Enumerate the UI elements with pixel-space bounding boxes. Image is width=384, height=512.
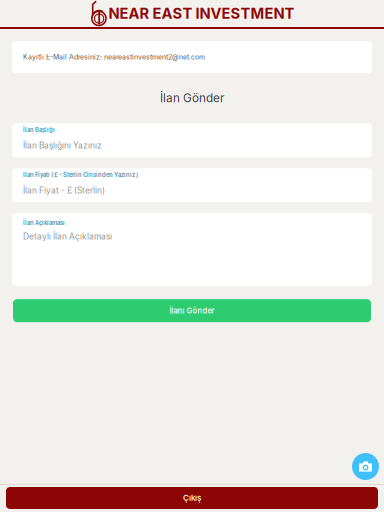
staticText: NEAR EAST INVESTMENT bbox=[108, 5, 294, 22]
staticText: İlan Gönder bbox=[160, 91, 224, 105]
staticText: Çıkış bbox=[183, 493, 201, 503]
button[interactable]: İlan Başlığı bbox=[12, 123, 372, 157]
staticText: Detaylı İlan Açıklaması bbox=[23, 231, 112, 241]
button[interactable]: İlan Fiyatı ( £ - Sterlin Cinsinden Yazı… bbox=[12, 168, 372, 202]
staticText: İlan Başlığı bbox=[23, 126, 55, 133]
staticText: İlan Açıklaması bbox=[23, 219, 65, 226]
staticText: İlan Fiyat - £ (Sterlin) bbox=[23, 185, 105, 195]
button[interactable]: Çıkış bbox=[0, 485, 384, 512]
button[interactable]: İlan Açıklaması bbox=[12, 213, 372, 286]
button[interactable]: İlanı Gönder bbox=[0, 286, 384, 322]
button[interactable]: Fotoğraf ekle bbox=[352, 453, 379, 480]
staticText: İlan Fiyatı ( £ - Sterlin Cinsinden Yazı… bbox=[23, 171, 138, 178]
staticText: Kayıtlı E-Mail Adresiniz: neareastinvest… bbox=[23, 53, 205, 61]
staticText: İlanı Gönder bbox=[169, 306, 214, 315]
staticText: İlan Başlığını Yazınız bbox=[23, 140, 102, 150]
